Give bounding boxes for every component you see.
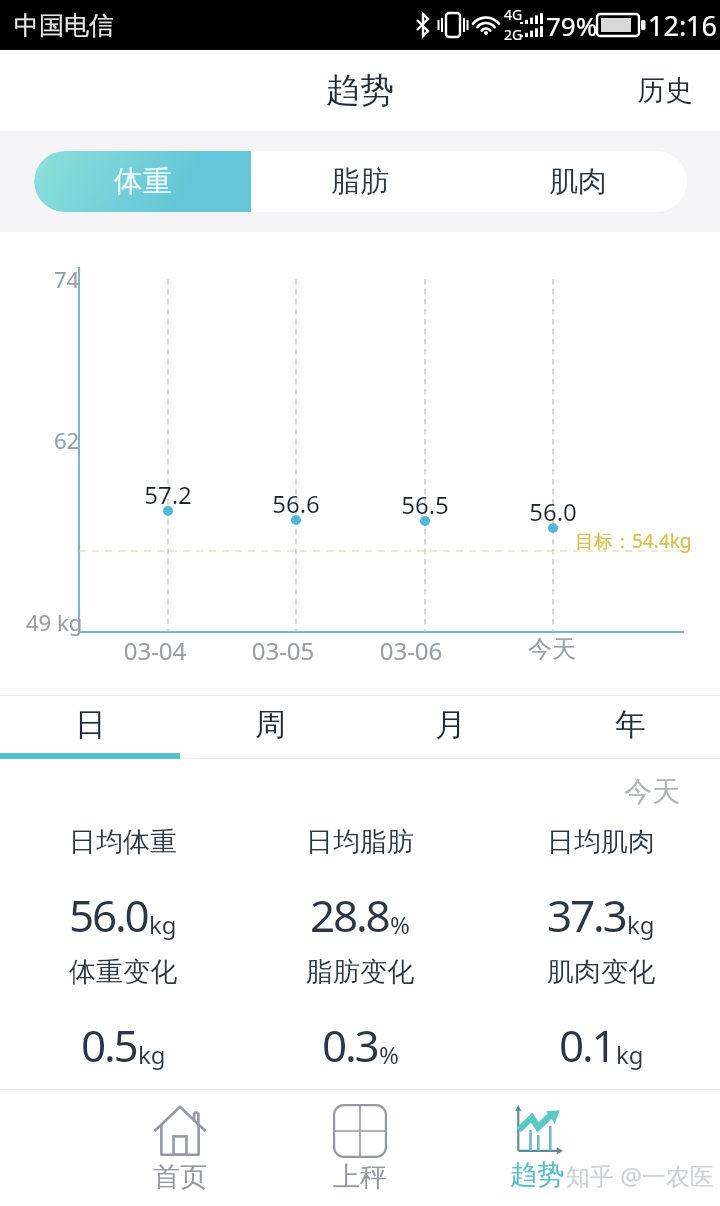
staticText: 2G [504,25,523,44]
staticText: 体重变化 [69,955,177,989]
staticText: % [379,1038,399,1071]
staticText: 57.2 [120,478,216,511]
button[interactable]: 趋势 [457,1090,617,1206]
staticText: 4G [504,5,523,24]
staticText: 趋势 [326,69,394,112]
staticText: 知乎 @一农医 [566,1159,714,1192]
button[interactable]: 上秤 [280,1090,440,1206]
staticText: 03-05 [223,634,343,667]
staticText: kg [627,908,655,941]
staticText: 肌肉 [549,163,607,200]
staticText: 目标：54.4kg [575,528,692,554]
staticText: 56.0 [505,495,601,528]
staticText: 日均肌肉 [547,825,655,859]
staticText: 79% [546,8,598,43]
button[interactable]: 肌肉 [469,151,687,212]
button[interactable]: 体重 [34,151,251,212]
staticText: kg [138,1038,166,1071]
staticText: 趋势 [510,1158,564,1192]
button[interactable]: 历史 [610,53,720,128]
staticText: 今天 [624,774,680,809]
staticText: 历史 [637,73,693,108]
staticText: 今天 [492,634,612,664]
staticText: 49 kg [26,607,83,637]
staticText: 周 [255,705,286,744]
staticText: % [390,908,410,941]
button[interactable]: 脂肪 [251,151,469,212]
button[interactable]: 首页 [100,1090,260,1206]
staticText: 肌肉变化 [547,955,655,989]
staticText: 月 [435,705,466,744]
staticText: 74 [54,264,80,294]
button[interactable]: 月 [360,696,540,753]
staticText: 0.5 [81,1015,137,1075]
staticText: 体重 [114,163,172,200]
staticText: 0.1 [559,1015,615,1075]
staticText: 上秤 [333,1160,387,1194]
staticText: 28.8 [310,885,389,945]
staticText: 62 [54,425,80,455]
staticText: 56.6 [248,487,344,520]
staticText: 日均体重 [69,825,177,859]
staticText: 脂肪 [331,163,389,200]
staticText: 日 [75,705,106,744]
staticText: 12:16 [648,7,718,44]
button[interactable]: 年 [540,696,720,753]
staticText: 首页 [153,1160,207,1194]
button[interactable]: 周 [180,696,360,753]
staticText: 37.3 [547,885,626,945]
staticText: kg [616,1038,644,1071]
staticText: 中国电信 [14,10,114,41]
staticText: 03-06 [351,634,471,667]
staticText: 脂肪变化 [306,955,414,989]
button[interactable]: 日 [0,696,180,753]
staticText: 年 [615,705,646,744]
staticText: 56.0 [69,885,148,945]
staticText: 56.5 [377,488,473,521]
staticText: 日均脂肪 [306,825,414,859]
staticText: 03-04 [95,634,215,667]
staticText: kg [149,908,177,941]
staticText: 0.3 [322,1015,378,1075]
